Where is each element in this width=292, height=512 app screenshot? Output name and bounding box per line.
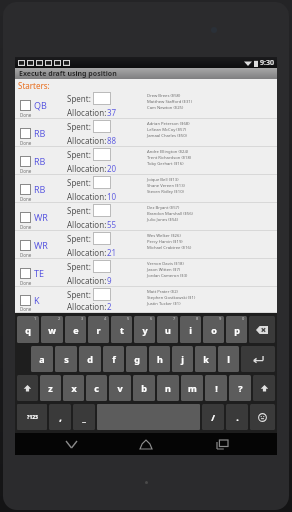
button[interactable]: Spent amount field <box>93 176 111 189</box>
button[interactable]: t <box>111 316 132 343</box>
staticText: Done <box>20 224 32 230</box>
staticText: 88 <box>107 135 117 146</box>
staticText: Allocation: <box>67 301 107 312</box>
staticText: . <box>236 411 239 423</box>
button[interactable]: Home <box>126 433 166 455</box>
button[interactable]: ?123 <box>17 404 47 430</box>
button[interactable]: Done checkbox <box>15 231 277 259</box>
button[interactable]: Shift <box>253 375 275 401</box>
button[interactable]: u <box>157 316 178 343</box>
button[interactable]: Done checkbox <box>20 240 31 251</box>
button[interactable]: Done checkbox <box>20 268 31 279</box>
staticText: 10 <box>107 191 117 202</box>
button[interactable]: c <box>86 375 107 401</box>
button[interactable]: i <box>180 316 201 343</box>
button[interactable]: m <box>181 375 203 401</box>
button[interactable]: Recent apps <box>202 433 242 455</box>
button[interactable]: p <box>226 316 247 343</box>
button[interactable]: Spent amount field <box>93 92 111 105</box>
staticText: j <box>181 353 184 365</box>
staticText: Julio Jones ($54) <box>147 217 178 223</box>
staticText: f <box>112 353 116 365</box>
button[interactable]: Spent amount field <box>93 260 111 273</box>
button[interactable]: Done checkbox <box>15 91 277 119</box>
button[interactable]: Done checkbox <box>20 100 31 111</box>
button[interactable]: , <box>49 404 71 430</box>
button[interactable]: Done checkbox <box>20 212 31 223</box>
staticText: 4 <box>104 316 107 321</box>
staticText: i <box>189 324 192 336</box>
staticText: Trent Richardson ($18) <box>147 155 192 161</box>
staticText: ! <box>215 382 218 394</box>
button[interactable]: j <box>172 346 193 372</box>
button[interactable]: Done checkbox <box>15 203 277 231</box>
button[interactable]: Spent amount field <box>93 204 111 217</box>
staticText: Cam Newton ($25) <box>147 105 184 111</box>
button[interactable]: o <box>203 316 224 343</box>
staticText: d <box>87 353 93 365</box>
button[interactable]: Emoji <box>250 404 275 430</box>
button[interactable]: h <box>149 346 170 372</box>
button[interactable]: Done checkbox <box>15 259 277 287</box>
staticText: 0 <box>242 316 245 321</box>
staticText: 9 <box>107 275 112 286</box>
button[interactable]: Done checkbox <box>20 295 31 306</box>
button[interactable]: Enter <box>241 346 275 372</box>
button[interactable]: f <box>103 346 124 372</box>
button[interactable]: . <box>226 404 248 430</box>
staticText: Spent: <box>67 261 91 272</box>
button[interactable]: ! <box>205 375 227 401</box>
button[interactable]: Done checkbox <box>15 175 277 203</box>
button[interactable]: b <box>133 375 155 401</box>
button[interactable]: Spent amount field <box>93 148 111 161</box>
staticText: 20 <box>107 163 117 174</box>
staticText: a <box>39 353 45 365</box>
button[interactable]: Back <box>51 433 91 455</box>
button[interactable]: Backspace <box>249 316 275 343</box>
button[interactable]: Done checkbox <box>20 128 31 139</box>
button[interactable]: z <box>40 375 61 401</box>
button[interactable]: s <box>55 346 77 372</box>
button[interactable]: Done checkbox <box>20 156 31 167</box>
staticText: RB <box>34 183 46 195</box>
button[interactable]: _ <box>73 404 95 430</box>
button[interactable]: d <box>79 346 101 372</box>
button[interactable]: Spent amount field <box>93 288 111 301</box>
button[interactable]: ? <box>229 375 251 401</box>
staticText: h <box>157 353 163 365</box>
button[interactable]: l <box>218 346 239 372</box>
button[interactable]: / <box>202 404 224 430</box>
button[interactable]: Shift <box>17 375 38 401</box>
staticText: Michael Crabtree ($16) <box>147 245 192 251</box>
button[interactable]: w <box>41 316 63 343</box>
button[interactable]: n <box>157 375 179 401</box>
staticText: / <box>211 411 215 423</box>
staticText: Drew Brees ($58) <box>147 93 181 99</box>
button[interactable]: v <box>109 375 131 401</box>
staticText: 2 <box>58 316 61 321</box>
button[interactable]: e <box>65 316 86 343</box>
button[interactable]: k <box>195 346 216 372</box>
button[interactable]: x <box>63 375 84 401</box>
button[interactable]: g <box>126 346 147 372</box>
button[interactable]: Spent amount field <box>93 120 111 133</box>
button[interactable]: Done checkbox <box>15 147 277 175</box>
staticText: Done <box>20 140 32 146</box>
staticText: Adrian Peterson ($68) <box>147 121 190 127</box>
button[interactable]: y <box>134 316 155 343</box>
staticText: Done <box>20 112 32 118</box>
button[interactable]: Done checkbox <box>15 119 277 147</box>
button[interactable]: Done checkbox <box>15 287 277 313</box>
staticText: Starters: <box>18 80 50 91</box>
button[interactable]: q <box>17 316 39 343</box>
staticText: RB <box>34 155 46 167</box>
button[interactable]: Spent amount field <box>93 232 111 245</box>
button[interactable]: a <box>31 346 53 372</box>
staticText: WR <box>34 211 48 223</box>
button[interactable]: Done checkbox <box>20 184 31 195</box>
staticText: LeSean McCoy ($57) <box>147 127 187 133</box>
staticText: x <box>71 382 77 394</box>
button[interactable]: r <box>88 316 109 343</box>
staticText: Justin Tucker ($1) <box>147 301 181 307</box>
